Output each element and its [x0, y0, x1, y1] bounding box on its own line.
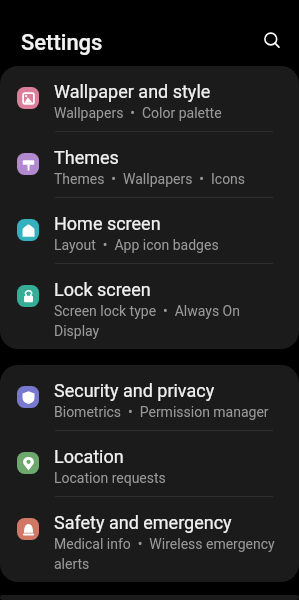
- button[interactable]: Home screen: [0, 198, 299, 264]
- button[interactable]: Lock screen: [0, 264, 299, 349]
- button[interactable]: Themes: [0, 132, 299, 198]
- staticText: Location requests: [54, 470, 166, 486]
- staticText: Themes • Wallpapers • Icons: [54, 171, 246, 187]
- staticText: Location: [54, 446, 124, 467]
- button[interactable]: Safety and emergency: [0, 497, 299, 582]
- staticText: Medical info • Wireless emergency alerts: [54, 536, 280, 572]
- staticText: Settings: [21, 30, 103, 56]
- staticText: Wallpapers • Color palette: [54, 105, 222, 121]
- button[interactable]: Location: [0, 431, 299, 497]
- button[interactable]: Wallpaper and style: [0, 66, 299, 132]
- staticText: Home screen: [54, 213, 161, 234]
- staticText: Safety and emergency: [54, 512, 232, 533]
- staticText: Themes: [54, 147, 119, 168]
- staticText: Wallpaper and style: [54, 81, 211, 102]
- button[interactable]: Search: [256, 25, 288, 57]
- staticText: Layout • App icon badges: [54, 237, 219, 253]
- button[interactable]: Security and privacy: [0, 365, 299, 431]
- staticText: Security and privacy: [54, 380, 215, 401]
- staticText: Biometrics • Permission manager: [54, 404, 269, 420]
- staticText: Lock screen: [54, 279, 151, 300]
- staticText: Screen lock type • Always On Display: [54, 303, 280, 339]
